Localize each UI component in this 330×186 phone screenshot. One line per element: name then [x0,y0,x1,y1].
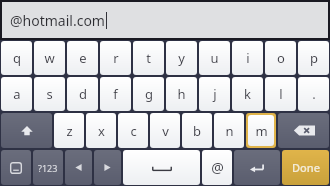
button[interactable]: Enter [234,150,280,185]
staticText: z [66,122,73,140]
button[interactable]: n [214,113,244,148]
button[interactable]: e [67,41,98,75]
staticText: e [79,49,87,67]
staticText: q [13,49,21,67]
button[interactable]: y [166,41,197,75]
button[interactable]: Space [123,150,200,185]
button[interactable]: u [199,41,230,75]
button[interactable]: c [118,113,148,148]
staticText: d [79,85,87,103]
button[interactable]: x [86,113,116,148]
staticText: b [193,122,201,140]
button[interactable]: Move right [94,150,121,185]
button[interactable]: z [54,113,84,148]
button[interactable]: Backspace [278,113,329,148]
staticText: m [255,122,268,140]
button[interactable]: a [1,77,32,111]
button[interactable]: t [133,41,164,75]
button[interactable]: j [199,77,230,111]
staticText: j [213,85,217,103]
button[interactable]: d [67,77,98,111]
button[interactable]: s [34,77,65,111]
button[interactable]: k [232,77,263,111]
button[interactable]: r [100,41,131,75]
button[interactable]: . [298,77,329,111]
staticText: @ [211,158,224,177]
staticText: s [46,85,53,103]
staticText: y [178,49,185,67]
staticText: h [177,85,186,103]
button[interactable]: @ [202,150,232,185]
staticText: t [146,49,151,67]
staticText: w [44,49,55,67]
button[interactable]: Switch input method [1,150,31,185]
staticText: a [13,85,21,103]
button[interactable]: w [34,41,65,75]
staticText: @hotmail.com [10,11,105,30]
staticText: g [145,85,153,103]
staticText: o [277,49,285,67]
button[interactable]: i [232,41,263,75]
staticText: c [130,122,137,140]
staticText: n [225,122,234,140]
button[interactable]: g [133,77,164,111]
button[interactable]: l [265,77,296,111]
staticText: p [310,49,318,67]
staticText: v [162,122,169,140]
button[interactable]: @hotmail.com [2,2,328,38]
button[interactable]: h [166,77,197,111]
button[interactable]: v [150,113,180,148]
staticText: x [98,122,105,140]
staticText: ?123 [38,162,58,174]
staticText: l [279,85,283,103]
staticText: f [113,85,118,103]
button[interactable]: q [1,41,32,75]
staticText: k [244,85,251,103]
button[interactable]: p [298,41,329,75]
button[interactable]: Move left [65,150,92,185]
staticText: u [210,49,219,67]
staticText: Done [292,160,320,175]
staticText: . [312,85,316,103]
button[interactable]: f [100,77,131,111]
button[interactable]: Shift [1,113,52,148]
staticText: i [246,49,250,67]
button[interactable]: Done [282,150,329,185]
button[interactable]: o [265,41,296,75]
staticText: r [113,49,119,67]
button[interactable]: ?123 [33,150,63,185]
button[interactable]: m [248,115,274,146]
button[interactable]: b [182,113,212,148]
